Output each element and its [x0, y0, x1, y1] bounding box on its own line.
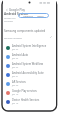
button[interactable]: Android Auto — [3, 52, 56, 61]
staticText: Jun 20 — [12, 84, 19, 87]
button[interactable]: Android System WebView — [3, 61, 56, 70]
button[interactable]: Edit — [49, 35, 53, 39]
staticText: Android System — [4, 12, 29, 16]
staticText: Jun 19 — [12, 93, 19, 96]
staticText: Samsung components updated — [4, 29, 46, 33]
staticText: Recently updated — [4, 37, 22, 40]
button[interactable]: Uninstall Open — [18, 13, 49, 18]
staticText: Jun 24 — [12, 48, 19, 51]
button[interactable]: Back — [5, 8, 9, 12]
staticText: Jun 23 — [12, 57, 19, 60]
button[interactable]: Google Play services — [3, 88, 56, 97]
staticText: Jun 21 — [12, 75, 19, 78]
staticText: Android System Intelligence — [12, 44, 47, 48]
staticText: Jun 18 — [12, 102, 19, 105]
staticText: Uninstall Open — [23, 14, 44, 17]
staticText: Android Accessibility Suite — [12, 71, 44, 75]
button[interactable]: Android Accessibility Suite — [3, 70, 56, 79]
staticText: Google LLC — [4, 17, 16, 20]
button[interactable]: AR Services — [3, 79, 56, 88]
staticText: Installed — [4, 20, 13, 23]
staticText: Android Auto — [12, 53, 29, 57]
button[interactable]: Device Health Services — [3, 97, 56, 106]
button[interactable]: Android System Intelligence — [3, 43, 56, 52]
staticText: Jun 22 — [12, 66, 19, 69]
staticText: Android System WebView — [12, 62, 43, 66]
staticText: Device Health Services — [12, 98, 40, 102]
staticText: AR Services — [12, 80, 26, 84]
staticText: Google Play — [9, 8, 26, 12]
staticText: Google Play services — [12, 89, 37, 93]
